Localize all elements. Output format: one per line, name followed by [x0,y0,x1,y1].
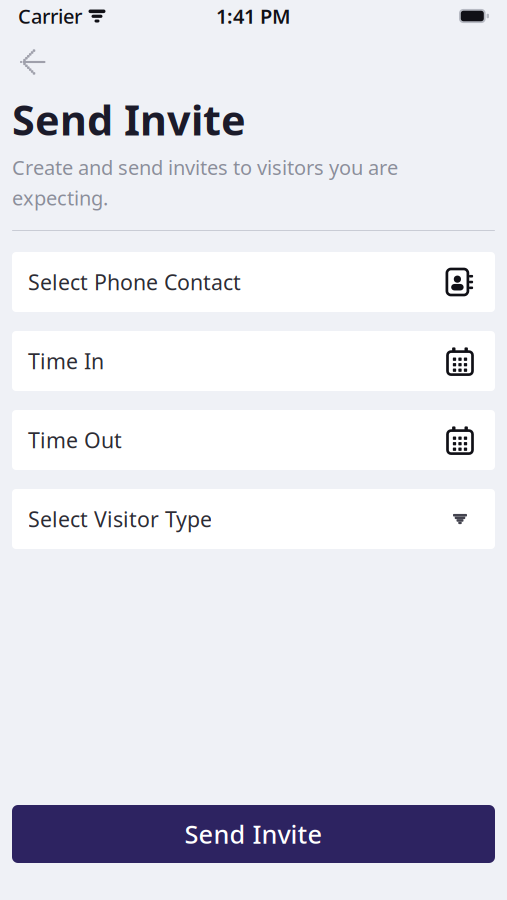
staticText: Create and send invites to visitors you … [12,154,398,211]
staticText: Time In [28,347,104,375]
staticText: Send Invite [12,92,246,147]
button[interactable]: Select Phone Contact [12,252,495,312]
button[interactable]: Time Out [12,410,495,470]
button[interactable]: Select Visitor Type [12,489,495,549]
staticText: Select Visitor Type [28,505,212,533]
staticText: Carrier [18,3,82,29]
staticText: Send Invite [184,817,322,851]
button[interactable]: Back [12,42,56,82]
staticText: Select Phone Contact [28,268,241,296]
button[interactable]: Send Invite [12,805,495,863]
staticText: Time Out [28,426,122,454]
staticText: 1:41 PM [216,3,291,29]
button[interactable]: Time In [12,331,495,391]
